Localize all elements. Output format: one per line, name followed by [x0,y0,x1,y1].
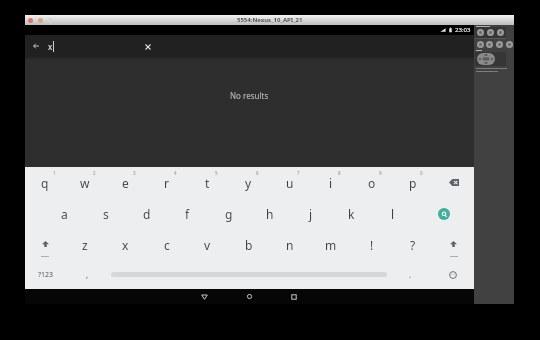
button[interactable]: ? [392,229,433,260]
staticText: x [48,41,53,52]
staticText: 9 [379,170,382,176]
button[interactable]: a [44,198,85,229]
staticText: o [368,175,376,191]
staticText: b [245,237,253,253]
staticText: v [204,237,211,253]
button[interactable]: 1 [25,167,65,198]
button[interactable]: Emulator control 5 [496,41,503,48]
button[interactable]: Home [241,289,257,304]
button[interactable]: g [208,198,249,229]
button[interactable]: l [372,198,413,229]
button[interactable]: DPad [477,53,495,65]
staticText: 1 [53,170,56,176]
button[interactable]: k [331,198,372,229]
button[interactable]: 0 [392,167,433,198]
button[interactable]: 2 [65,167,105,198]
staticText: ! [370,237,374,253]
button[interactable]: n [269,229,310,260]
button[interactable]: j [290,198,331,229]
button[interactable]: Shift [25,229,65,260]
staticText: e [122,175,129,191]
staticText: 23:03 [455,26,471,34]
staticText: No results [230,90,269,101]
staticText: x [122,237,129,253]
button[interactable]: Emoji [431,260,474,289]
button[interactable]: s [85,198,126,229]
staticText: 0 [420,170,423,176]
button[interactable]: Emulator control 0 [477,29,484,36]
staticText: p [409,175,417,191]
staticText: , [86,269,89,280]
staticText: 4 [174,170,177,176]
staticText: s [103,206,109,222]
button[interactable]: v [187,229,228,260]
button[interactable]: f [167,198,208,229]
button[interactable]: ! [351,229,392,260]
staticText: a [61,206,68,222]
button[interactable]: 3 [105,167,146,198]
button[interactable]: Back [196,289,212,304]
staticText: r [164,175,169,191]
button[interactable]: 8 [310,167,351,198]
button[interactable]: x [105,229,146,260]
staticText: 8 [338,170,341,176]
staticText: u [286,175,294,191]
staticText: k [348,206,355,222]
staticText: 5 [215,170,218,176]
staticText: n [286,237,294,253]
button[interactable]: 7 [269,167,310,198]
staticText: g [225,206,233,222]
staticText: d [143,206,151,222]
button[interactable]: m [310,229,351,260]
button[interactable]: Clear search [139,38,156,55]
staticText: w [80,175,90,191]
staticText: ? [410,237,416,253]
staticText: . [409,269,412,280]
button[interactable]: Recent apps [286,289,302,304]
button[interactable]: , [67,260,108,289]
staticText: 6 [256,170,259,176]
staticText: ?123 [38,270,54,280]
button[interactable]: Back [28,38,44,54]
staticText: j [309,206,313,222]
button[interactable]: b [228,229,269,260]
staticText: c [164,237,170,253]
button[interactable]: Emulator control 1 [487,29,494,36]
staticText: 3 [133,170,136,176]
button[interactable]: Shift [433,229,474,260]
staticText: f [185,206,190,222]
staticText: y [245,175,252,191]
staticText: t [205,175,210,191]
button[interactable]: Emulator control 4 [486,41,493,48]
staticText: h [266,206,274,222]
staticText: 7 [297,170,300,176]
staticText: z [82,237,88,253]
staticText: l [391,206,395,222]
button[interactable]: d [126,198,167,229]
button[interactable]: h [249,198,290,229]
staticText: 5554:Nexus_10_API_21 [237,16,303,24]
button[interactable]: Emulator control 2 [497,29,504,36]
staticText: i [329,175,333,191]
button[interactable]: Backspace [433,167,474,198]
button[interactable]: Emulator control 3 [477,41,484,48]
button[interactable]: 9 [351,167,392,198]
staticText: 2 [93,170,96,176]
button[interactable]: 5 [187,167,228,198]
button[interactable]: Search [413,198,474,229]
button[interactable]: Space [108,260,390,289]
button[interactable]: 6 [228,167,269,198]
button[interactable]: c [146,229,187,260]
button[interactable]: Emulator control 6 [506,41,513,48]
button[interactable]: z [65,229,105,260]
button[interactable]: ?123 [25,260,67,289]
staticText: q [41,175,49,191]
button[interactable]: 4 [146,167,187,198]
staticText: m [325,237,337,253]
